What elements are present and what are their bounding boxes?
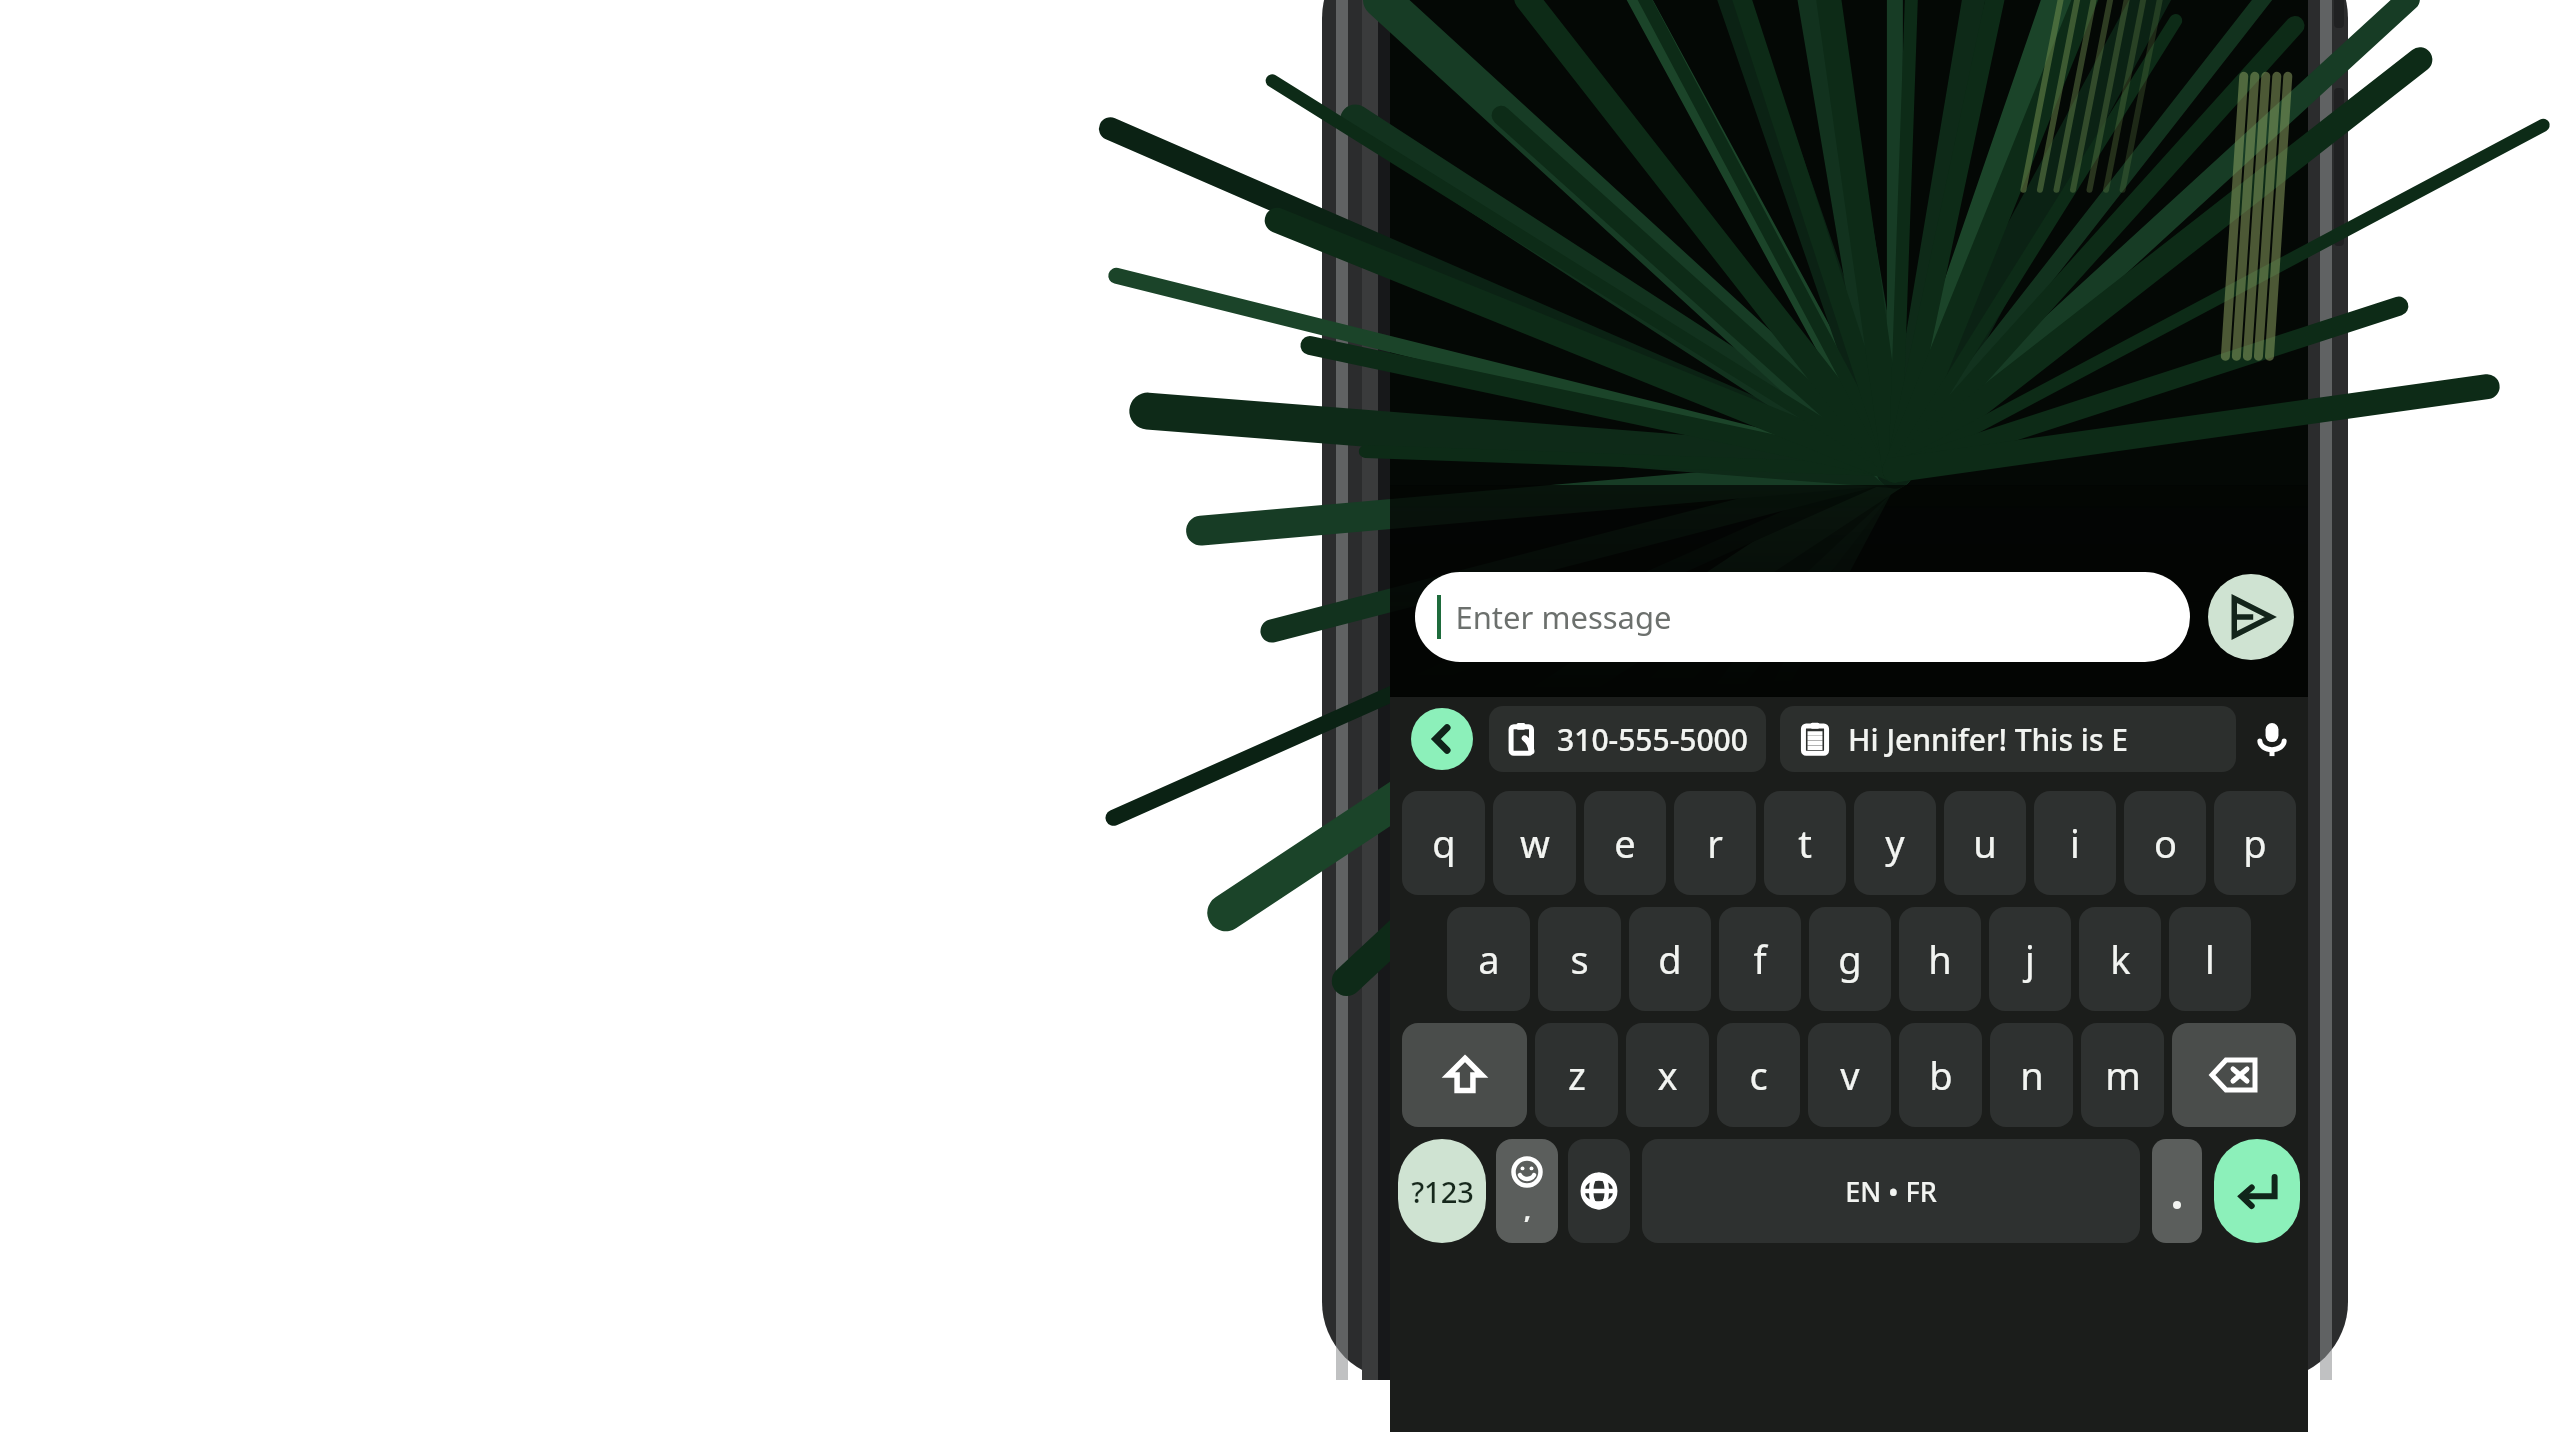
button[interactable]: k [2079, 907, 2161, 1011]
button[interactable]: 310-555-5000 [1489, 706, 1766, 772]
button[interactable]: r [1674, 791, 1756, 895]
button[interactable]: Enter message [1415, 572, 2190, 662]
staticText: 310-555-5000 [1557, 719, 1748, 760]
staticText: h [1928, 933, 1952, 985]
button[interactable]: Back [1411, 708, 1473, 770]
staticText: i [2070, 817, 2080, 869]
staticText: v [1840, 1049, 1860, 1101]
staticText: r [1707, 817, 1723, 869]
button[interactable]: c [1717, 1023, 1800, 1127]
staticText: e [1614, 817, 1636, 869]
staticText: c [1749, 1049, 1768, 1101]
button[interactable] [2152, 1139, 2202, 1243]
staticText: b [1929, 1049, 1953, 1101]
button[interactable]: q [1402, 791, 1485, 895]
staticText: p [2243, 817, 2267, 869]
staticText: q [1432, 817, 1456, 869]
button[interactable]: ?123 [1398, 1139, 1486, 1243]
button[interactable]: n [1990, 1023, 2073, 1127]
button[interactable]: e [1584, 791, 1666, 895]
staticText: , [1524, 1193, 1531, 1226]
button[interactable]: m [2081, 1023, 2164, 1127]
staticText: j [2025, 933, 2035, 985]
button[interactable]: g [1809, 907, 1891, 1011]
button[interactable]: w [1493, 791, 1576, 895]
staticText: EN • FR [1845, 1173, 1937, 1210]
staticText: l [2205, 933, 2215, 985]
button[interactable]: s [1538, 907, 1621, 1011]
button[interactable]: u [1944, 791, 2026, 895]
button[interactable]: Send [2208, 574, 2294, 660]
button[interactable]: o [2124, 791, 2206, 895]
button[interactable]: i [2034, 791, 2116, 895]
button[interactable]: y [1854, 791, 1936, 895]
button[interactable]: t [1764, 791, 1846, 895]
button[interactable]: h [1899, 907, 1981, 1011]
staticText: w [1520, 817, 1550, 869]
staticText: z [1568, 1049, 1586, 1101]
staticText: Enter message [1455, 596, 1672, 638]
button[interactable]: j [1989, 907, 2071, 1011]
button[interactable]: Backspace [2172, 1023, 2296, 1127]
staticText: k [2110, 933, 2131, 985]
button[interactable]: d [1629, 907, 1711, 1011]
staticText: x [1657, 1049, 1678, 1101]
staticText: s [1570, 933, 1589, 985]
staticText: d [1658, 933, 1682, 985]
staticText: y [1885, 817, 1905, 869]
button[interactable]: Emoji [1496, 1139, 1558, 1243]
button[interactable]: x [1626, 1023, 1709, 1127]
button[interactable]: Change language [1568, 1139, 1630, 1243]
button[interactable]: z [1535, 1023, 1618, 1127]
staticText: t [1798, 817, 1812, 869]
button[interactable]: Shift [1402, 1023, 1527, 1127]
staticText: ?123 [1411, 1172, 1474, 1211]
staticText: Hi Jennifer! This is E [1848, 719, 2128, 760]
staticText: g [1838, 933, 1862, 985]
staticText: m [2105, 1049, 2141, 1101]
button[interactable]: Voice input [2236, 706, 2308, 772]
button[interactable]: Hi Jennifer! This is E [1780, 706, 2236, 772]
button[interactable]: b [1899, 1023, 1982, 1127]
button[interactable]: Enter [2214, 1139, 2300, 1243]
button[interactable]: l [2169, 907, 2251, 1011]
button[interactable]: f [1719, 907, 1801, 1011]
staticText: n [2020, 1049, 2044, 1101]
button[interactable]: p [2214, 791, 2296, 895]
button[interactable]: v [1808, 1023, 1891, 1127]
staticText: a [1478, 933, 1500, 985]
button[interactable]: a [1447, 907, 1530, 1011]
staticText: u [1973, 817, 1997, 869]
button[interactable]: EN • FR [1642, 1139, 2140, 1243]
staticText: f [1753, 933, 1767, 985]
staticText: o [2154, 817, 2177, 869]
